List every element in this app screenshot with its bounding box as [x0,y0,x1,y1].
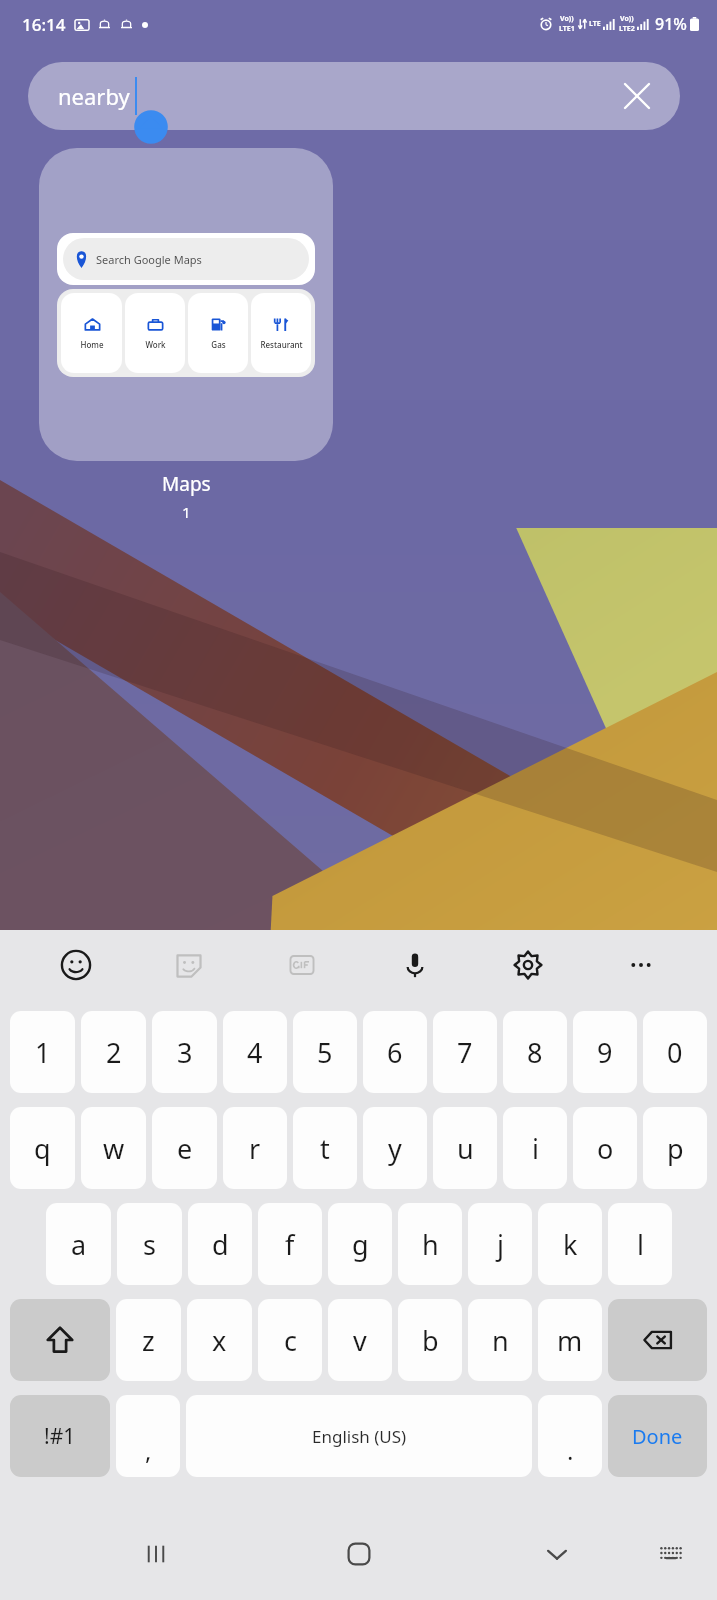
button[interactable]: d [188,1203,252,1285]
button[interactable]: GIF [245,930,358,1000]
button[interactable]: g [328,1203,392,1285]
staticText: n [492,1322,509,1359]
staticText: b [422,1322,439,1359]
button[interactable]: m [538,1299,602,1381]
button[interactable]: h [398,1203,462,1285]
button[interactable]: Work [125,293,185,373]
button[interactable]: x [187,1299,252,1381]
staticText: Gas [211,339,226,350]
button[interactable]: q [10,1107,75,1189]
button[interactable]: 3 [152,1011,217,1093]
button[interactable]: Emoji [20,930,132,1000]
button[interactable]: 6 [363,1011,427,1093]
staticText: t [320,1130,330,1167]
button[interactable]: Search Google Maps [63,238,309,280]
button[interactable]: English (US) [186,1395,532,1477]
button[interactable]: Clear search [616,75,658,117]
button[interactable]: 0 [643,1011,707,1093]
staticText: 0 [667,1034,683,1071]
button[interactable]: nearby [28,62,680,130]
button[interactable]: w [81,1107,146,1189]
button[interactable]: j [468,1203,532,1285]
button[interactable]: Shift [10,1299,110,1381]
staticText: j [497,1226,504,1263]
button[interactable]: More options [584,930,697,1000]
staticText: !#1 [44,1422,76,1451]
button[interactable]: Home [323,1518,395,1590]
staticText: m [557,1322,583,1359]
staticText: nearby [58,81,130,111]
staticText: s [143,1226,156,1263]
staticText: 5 [317,1034,333,1071]
button[interactable]: z [116,1299,181,1381]
staticText: LTE [589,19,601,29]
button[interactable]: v [328,1299,392,1381]
staticText: Maps [162,471,211,497]
button[interactable]: Settings [471,930,584,1000]
button[interactable]: !#1 [10,1395,110,1477]
button[interactable]: Gas [188,293,248,373]
button[interactable]: t [293,1107,357,1189]
staticText: k [563,1226,578,1263]
staticText: Search Google Maps [96,252,202,267]
button[interactable]: Voice input [358,930,471,1000]
staticText: v [353,1322,367,1359]
staticText: p [667,1130,684,1167]
staticText: l [637,1226,644,1263]
button[interactable]: i [503,1107,567,1189]
button[interactable]: 4 [223,1011,287,1093]
staticText: 8 [527,1034,543,1071]
button[interactable]: Recents [120,1518,192,1590]
staticText: y [388,1130,402,1167]
button[interactable]: k [538,1203,602,1285]
staticText: h [422,1226,439,1263]
button[interactable]: 2 [81,1011,146,1093]
staticText: . [567,1434,574,1467]
button[interactable]: 5 [293,1011,357,1093]
button[interactable]: n [468,1299,532,1381]
button[interactable]: Hide keyboard [521,1518,593,1590]
button[interactable]: Backspace [608,1299,707,1381]
staticText: LTE2 [619,24,635,34]
staticText: u [457,1130,474,1167]
button[interactable]: Search Google Maps [39,148,333,461]
staticText: English (US) [312,1425,407,1448]
button[interactable]: Home [61,293,122,373]
button[interactable]: o [573,1107,637,1189]
button[interactable]: 7 [433,1011,497,1093]
button[interactable]: y [363,1107,427,1189]
staticText: i [532,1130,539,1167]
button[interactable]: Change keyboard [635,1518,707,1590]
staticText: 16:14 [22,13,66,36]
button[interactable]: l [608,1203,672,1285]
button[interactable]: Restaurant [251,293,311,373]
button[interactable]: Done [608,1395,707,1477]
button[interactable]: s [117,1203,182,1285]
button[interactable]: , [116,1395,180,1477]
button[interactable]: f [258,1203,322,1285]
button[interactable]: e [152,1107,217,1189]
button[interactable]: a [46,1203,111,1285]
button[interactable]: . [538,1395,602,1477]
staticText: g [352,1226,369,1263]
staticText: o [597,1130,614,1167]
button[interactable]: 8 [503,1011,567,1093]
staticText: q [34,1130,51,1167]
staticText: 9 [597,1034,613,1071]
button[interactable]: 1 [10,1011,75,1093]
staticText: Vo)) [560,14,574,24]
button[interactable]: 9 [573,1011,637,1093]
staticText: w [103,1130,125,1167]
button[interactable]: p [643,1107,707,1189]
button[interactable]: c [258,1299,322,1381]
staticText: LTE1 [559,24,575,34]
staticText: x [212,1322,227,1359]
button[interactable]: b [398,1299,462,1381]
staticText: a [71,1226,87,1263]
staticText: 7 [457,1034,473,1071]
button[interactable]: r [223,1107,287,1189]
staticText: c [284,1322,297,1359]
button[interactable]: Stickers [132,930,245,1000]
staticText: 1 [182,502,191,522]
button[interactable]: u [433,1107,497,1189]
